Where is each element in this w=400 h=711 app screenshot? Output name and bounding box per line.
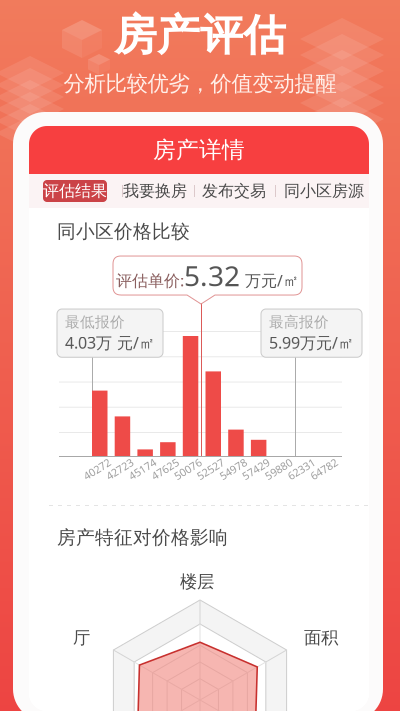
button[interactable]: 发布交易 xyxy=(208,180,260,202)
staticText: 5.99万元/㎡ xyxy=(269,332,354,353)
staticText: 最高报价 xyxy=(269,313,329,331)
staticText: 54978 xyxy=(218,462,248,476)
button[interactable]: 我要换房 xyxy=(129,180,181,202)
staticText: 房产特征对价格影响 xyxy=(57,526,228,549)
staticText: 我要换房 xyxy=(123,181,187,201)
staticText: 评估结果 xyxy=(43,181,107,201)
staticText: 楼层 xyxy=(180,571,214,592)
staticText: 42723 xyxy=(105,462,135,476)
staticText: 最低报价 xyxy=(65,313,125,331)
staticText: 57429 xyxy=(241,462,271,476)
button[interactable]: 同小区房源 xyxy=(291,180,357,202)
staticText: 45174 xyxy=(127,462,157,476)
staticText: 厅 xyxy=(73,627,90,648)
staticText: 万元/㎡ xyxy=(240,270,299,291)
staticText: 房产详情 xyxy=(153,136,245,164)
staticText: 同小区价格比较 xyxy=(57,220,190,243)
staticText: 62331 xyxy=(286,462,316,476)
staticText: 47625 xyxy=(150,462,180,476)
staticText: 同小区房源 xyxy=(284,181,364,201)
staticText: 分析比较优劣，价值变动提醒 xyxy=(63,71,336,97)
staticText: 评估单价: xyxy=(116,270,184,291)
staticText: 52527 xyxy=(195,462,225,476)
staticText: 59880 xyxy=(264,462,294,476)
staticText: 面积 xyxy=(304,627,338,648)
staticText: 发布交易 xyxy=(202,181,266,201)
staticText: 40272 xyxy=(82,462,112,476)
staticText: 5.32 xyxy=(184,257,240,294)
staticText: 房产评估 xyxy=(114,9,286,62)
staticText: 4.03万 元/㎡ xyxy=(65,332,155,353)
staticText: 64782 xyxy=(309,462,339,476)
button[interactable]: 评估结果 xyxy=(43,180,107,202)
staticText: 50076 xyxy=(173,462,203,476)
